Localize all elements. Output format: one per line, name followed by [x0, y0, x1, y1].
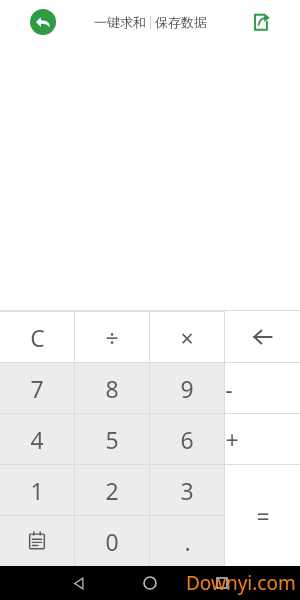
staticText: 9: [180, 373, 194, 404]
button[interactable]: 7: [0, 363, 74, 413]
staticText: 1: [30, 475, 44, 506]
button[interactable]: 0: [75, 516, 149, 566]
staticText: 6: [180, 424, 194, 455]
staticText: 0: [105, 526, 119, 557]
staticText: 7: [30, 373, 44, 404]
button[interactable]: Back: [26, 5, 60, 39]
button[interactable]: C: [0, 312, 74, 362]
button[interactable]: ×: [150, 312, 224, 362]
staticText: 5: [105, 424, 119, 455]
button[interactable]: Recents: [206, 567, 238, 599]
button[interactable]: Notes: [0, 516, 74, 566]
staticText: 2: [105, 475, 119, 506]
button[interactable]: ÷: [75, 312, 149, 362]
button[interactable]: Back: [62, 567, 94, 599]
button[interactable]: 保存数据: [151, 8, 211, 36]
button[interactable]: 3: [150, 465, 224, 515]
staticText: ×: [180, 322, 194, 353]
staticText: ÷: [105, 322, 119, 353]
staticText: 3: [180, 475, 194, 506]
staticText: .: [184, 526, 191, 557]
staticText: 8: [105, 373, 119, 404]
staticText: 4: [30, 424, 44, 455]
button[interactable]: 9: [150, 363, 224, 413]
button[interactable]: .: [150, 516, 224, 566]
button[interactable]: Backspace: [225, 311, 300, 362]
staticText: 保存数据: [155, 14, 207, 30]
staticText: +: [225, 424, 239, 455]
button[interactable]: 1: [0, 465, 74, 515]
staticText: -: [225, 373, 233, 404]
staticText: Downyi.com: [186, 570, 296, 596]
button[interactable]: +: [225, 414, 239, 464]
staticText: 一键求和: [94, 14, 146, 30]
button[interactable]: 2: [75, 465, 149, 515]
staticText: =: [256, 500, 270, 531]
button[interactable]: 一键求和: [90, 8, 150, 36]
button[interactable]: 4: [0, 414, 74, 464]
button[interactable]: Home: [134, 567, 166, 599]
button[interactable]: 6: [150, 414, 224, 464]
button[interactable]: Share: [246, 7, 276, 37]
staticText: C: [30, 322, 45, 353]
button[interactable]: 8: [75, 363, 149, 413]
button[interactable]: 5: [75, 414, 149, 464]
button[interactable]: =: [225, 465, 300, 566]
button[interactable]: -: [225, 363, 233, 413]
